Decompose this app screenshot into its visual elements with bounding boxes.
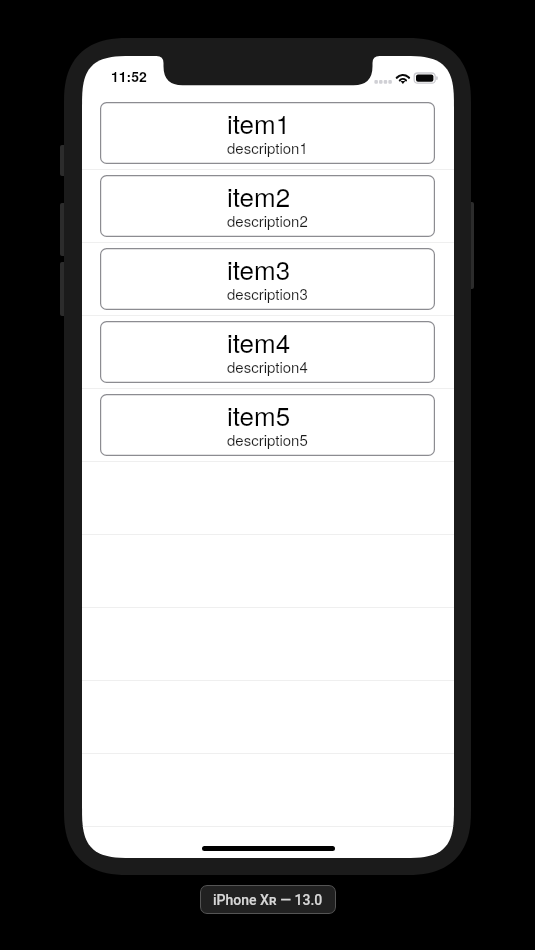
- button[interactable]: item2: [82, 170, 454, 243]
- staticText: item4: [227, 323, 291, 360]
- button[interactable]: iPhone Xʀ — 13.0: [200, 885, 336, 914]
- other: Status icons: [370, 70, 446, 90]
- staticText: description1: [227, 137, 308, 158]
- staticText: item1: [227, 104, 291, 141]
- staticText: description5: [227, 429, 308, 450]
- staticText: iPhone Xʀ — 13.0: [213, 892, 323, 908]
- button[interactable]: item4: [82, 316, 454, 389]
- staticText: description2: [227, 210, 308, 231]
- button[interactable]: item3: [82, 243, 454, 316]
- button[interactable]: item1: [82, 97, 454, 170]
- staticText: item2: [227, 177, 291, 214]
- staticText: description3: [227, 283, 308, 304]
- staticText: 11:52: [111, 66, 147, 86]
- staticText: description4: [227, 356, 308, 377]
- staticText: item5: [227, 396, 291, 433]
- button[interactable]: item5: [82, 389, 454, 462]
- staticText: item3: [227, 250, 291, 287]
